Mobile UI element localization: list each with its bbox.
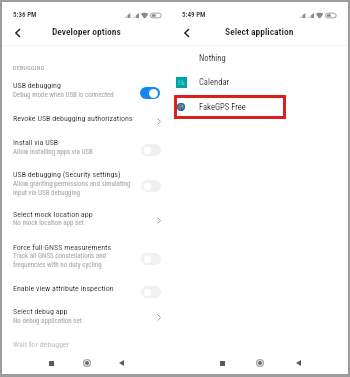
staticText: Allow granting permissions and simulatin… bbox=[13, 180, 131, 197]
button[interactable] bbox=[2, 106, 171, 131]
button[interactable]: Toggle off bbox=[141, 144, 161, 156]
staticText: Developer options bbox=[52, 26, 121, 37]
button[interactable]: Navigate up bbox=[6, 21, 29, 44]
button[interactable]: Toggle off bbox=[141, 286, 161, 298]
button[interactable] bbox=[2, 274, 171, 296]
staticText: Select mock location app bbox=[13, 210, 93, 219]
button[interactable] bbox=[2, 233, 171, 274]
staticText: Force full GNSS measurements bbox=[13, 243, 112, 252]
staticText: USB debugging (Security settings) bbox=[13, 170, 121, 179]
staticText: No debug application set bbox=[13, 317, 82, 325]
staticText: 5:36 PM bbox=[13, 11, 37, 19]
staticText: 5:49 PM bbox=[182, 11, 206, 19]
button[interactable]: FakeGPS Free bbox=[171, 96, 348, 119]
staticText: Select application bbox=[225, 26, 294, 37]
button[interactable]: Back bbox=[279, 353, 317, 373]
staticText: Install via USB bbox=[13, 138, 59, 147]
button[interactable]: Recent apps bbox=[203, 353, 241, 373]
staticText: Allow installing apps via USB bbox=[13, 148, 93, 156]
staticText: Revoke USB debugging authorizations bbox=[13, 114, 133, 123]
staticText: Track all GNSS constellations and freque… bbox=[13, 252, 107, 269]
button[interactable]: Toggle on bbox=[140, 87, 160, 99]
button[interactable]: Home bbox=[69, 353, 104, 373]
button[interactable]: Back bbox=[104, 353, 139, 373]
button[interactable]: Navigate up bbox=[175, 21, 198, 44]
button[interactable]: Home bbox=[241, 353, 279, 373]
button[interactable]: Toggle off bbox=[141, 253, 161, 265]
button[interactable]: Calendar bbox=[171, 71, 348, 94]
staticText: Enable view attribute inspection bbox=[13, 284, 114, 293]
button[interactable] bbox=[2, 131, 171, 161]
button[interactable] bbox=[2, 76, 171, 106]
staticText: Nothing bbox=[199, 53, 226, 63]
staticText: Calendar bbox=[199, 77, 230, 87]
staticText: DEBUGGING bbox=[13, 64, 45, 71]
staticText: Select debug app bbox=[13, 307, 68, 316]
button[interactable]: Nothing bbox=[171, 47, 348, 70]
staticText: Debug mode when USB is connected bbox=[13, 91, 114, 99]
button[interactable] bbox=[2, 201, 171, 233]
button[interactable]: Recent apps bbox=[34, 353, 69, 373]
button[interactable] bbox=[2, 296, 171, 326]
staticText: Wait for debugger bbox=[13, 340, 70, 349]
staticText: FakeGPS Free bbox=[199, 102, 246, 112]
button[interactable]: Toggle off bbox=[141, 180, 161, 192]
staticText: USB debugging bbox=[13, 81, 61, 90]
staticText: No mock location app set bbox=[13, 219, 84, 227]
button[interactable] bbox=[2, 161, 171, 201]
